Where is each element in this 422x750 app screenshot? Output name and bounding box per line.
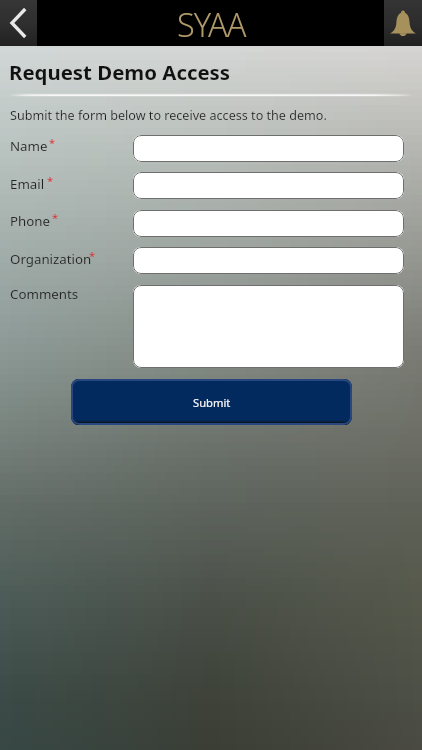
button[interactable] (133, 247, 404, 274)
staticText: Submit the form below to receive access … (10, 107, 327, 124)
staticText: Name (10, 137, 48, 155)
staticText: Request Demo Access (9, 58, 231, 86)
staticText: * (89, 248, 96, 263)
button[interactable]: Back (0, 0, 37, 46)
staticText: * (49, 135, 56, 150)
staticText: Organization (10, 250, 92, 268)
staticText: SYAA (177, 2, 246, 46)
button[interactable] (133, 210, 404, 237)
staticText: Phone (10, 212, 51, 230)
staticText: Email (10, 175, 45, 193)
button[interactable] (133, 135, 404, 162)
staticText: Submit (193, 395, 231, 410)
staticText: * (47, 173, 54, 188)
button[interactable]: Submit (71, 379, 352, 425)
staticText: * (52, 210, 59, 225)
staticText: Comments (10, 285, 79, 303)
button[interactable]: Notifications (384, 0, 422, 46)
button[interactable] (133, 285, 404, 368)
button[interactable] (133, 172, 404, 199)
